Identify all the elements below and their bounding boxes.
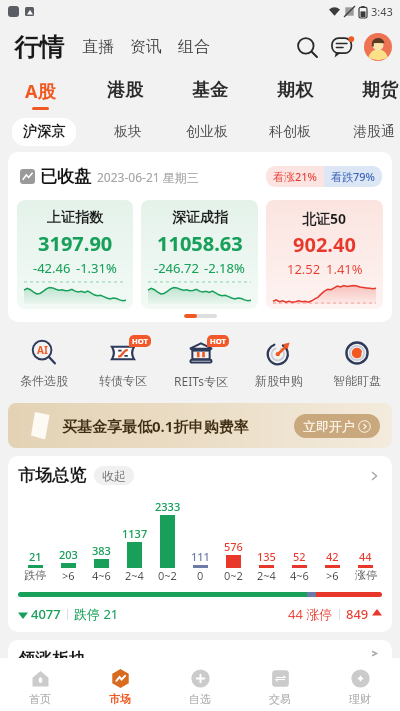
staticText: 4077 <box>31 605 61 623</box>
staticText: 4~6 <box>92 568 111 583</box>
button[interactable]: Profile <box>364 33 392 61</box>
staticText: 沪深京 <box>23 123 65 141</box>
button[interactable]: 板块 <box>88 116 168 148</box>
staticText: REITs专区 <box>174 373 228 389</box>
button[interactable]: 看涨21% <box>266 166 382 187</box>
button[interactable]: Search <box>290 30 324 64</box>
staticText: 2~4 <box>257 568 276 583</box>
button[interactable]: 期货 <box>350 79 400 108</box>
button[interactable]: 收起 <box>94 466 134 485</box>
staticText: 52 <box>293 549 306 564</box>
button[interactable]: 首页 <box>0 658 80 711</box>
staticText: 1137 <box>122 526 148 541</box>
button[interactable]: 沪深京 <box>4 116 84 148</box>
staticText: 11058.63 <box>157 230 243 257</box>
button[interactable]: 北证50 <box>266 200 383 309</box>
button[interactable]: A股 <box>10 79 70 110</box>
staticText: 期权 <box>277 79 313 102</box>
button[interactable]: 深证成指 <box>141 200 258 309</box>
staticText: 111 <box>191 549 210 564</box>
button[interactable]: 期权 <box>265 79 325 108</box>
staticText: 科创板 <box>269 123 311 141</box>
button[interactable]: 港股通 <box>334 116 400 148</box>
staticText: 交易 <box>269 692 291 706</box>
button[interactable]: 港股 <box>95 79 155 108</box>
staticText: 902.40 <box>293 231 356 258</box>
staticText: 自选 <box>189 692 211 706</box>
button[interactable]: 买基金享最低0.1折申购费率 <box>8 403 392 448</box>
button[interactable]: 交易 <box>240 658 320 711</box>
staticText: 2333 <box>155 499 181 514</box>
staticText: 转债专区 <box>99 373 147 388</box>
button[interactable]: 资讯 <box>122 31 170 63</box>
staticText: 港股 <box>107 79 143 102</box>
staticText: 21 <box>29 549 42 564</box>
button[interactable]: Messages <box>326 30 360 64</box>
staticText: -2.18% <box>204 259 245 277</box>
staticText: 新股申购 <box>255 373 303 388</box>
staticText: 立即开户 <box>303 418 355 434</box>
staticText: 42 <box>326 549 339 564</box>
staticText: 港股通 <box>353 123 395 141</box>
staticText: 智能盯盘 <box>333 373 381 388</box>
staticText: 849 <box>346 605 369 623</box>
staticText: 1.41% <box>326 260 363 278</box>
button[interactable]: 上证指数 <box>17 200 133 309</box>
button[interactable]: 理财 <box>320 658 400 711</box>
staticText: 基金 <box>192 79 228 102</box>
staticText: 看跌79% <box>331 169 375 184</box>
button[interactable]: More <box>366 468 382 484</box>
staticText: 跌停 21 <box>74 605 119 623</box>
staticText: 资讯 <box>130 37 162 57</box>
button[interactable]: 科创板 <box>250 116 330 148</box>
button[interactable]: HOT <box>162 337 240 390</box>
staticText: 已收盘 <box>40 166 91 187</box>
staticText: 3:43 <box>371 4 393 19</box>
staticText: 0~2 <box>224 568 243 583</box>
button[interactable]: 基金 <box>180 79 240 108</box>
staticText: 条件选股 <box>20 373 68 388</box>
staticText: 板块 <box>114 123 142 141</box>
staticText: -246.72 <box>154 259 199 277</box>
button[interactable]: HOT <box>83 337 162 389</box>
staticText: 12.52 <box>287 260 321 278</box>
staticText: 买基金享最低0.1折申购费率 <box>62 416 249 436</box>
staticText: A股 <box>25 79 56 104</box>
staticText: 理财 <box>349 692 371 706</box>
staticText: 383 <box>92 543 111 558</box>
staticText: -42.46 <box>33 259 71 277</box>
staticText: HOT <box>210 336 226 346</box>
staticText: 跌停 <box>24 568 46 582</box>
button[interactable]: 创业板 <box>167 116 247 148</box>
staticText: 44 <box>359 549 372 564</box>
button[interactable]: 智能盯盘 <box>318 337 396 389</box>
staticText: 创业板 <box>186 123 228 141</box>
staticText: 4~6 <box>290 568 309 583</box>
staticText: 深证成指 <box>172 209 228 227</box>
staticText: -1.31% <box>76 259 117 277</box>
staticText: 领涨板块 <box>18 649 86 658</box>
staticText: 135 <box>257 549 276 564</box>
staticText: 期货 <box>362 79 398 102</box>
button[interactable]: 新股申购 <box>240 337 318 389</box>
staticText: 看涨21% <box>273 169 317 184</box>
staticText: 首页 <box>29 692 51 706</box>
button[interactable]: 组合 <box>170 31 218 63</box>
button[interactable]: AI <box>4 337 83 389</box>
staticText: AI <box>37 343 48 357</box>
button[interactable]: 市场 <box>80 658 160 711</box>
button[interactable]: 立即开户 <box>294 414 380 438</box>
staticText: 576 <box>224 539 243 554</box>
button[interactable]: 自选 <box>160 658 240 711</box>
staticText: >6 <box>62 568 75 583</box>
staticText: 市场总览 <box>18 465 86 486</box>
staticText: HOT <box>132 336 148 346</box>
staticText: 44 涨停 <box>288 605 333 623</box>
staticText: 上证指数 <box>47 209 103 227</box>
staticText: 直播 <box>82 37 114 57</box>
staticText: 北证50 <box>302 209 347 228</box>
staticText: 203 <box>59 547 78 562</box>
staticText: 2023-06-21 星期三 <box>97 169 199 185</box>
button[interactable]: 直播 <box>74 31 122 63</box>
staticText: 0~2 <box>158 568 177 583</box>
